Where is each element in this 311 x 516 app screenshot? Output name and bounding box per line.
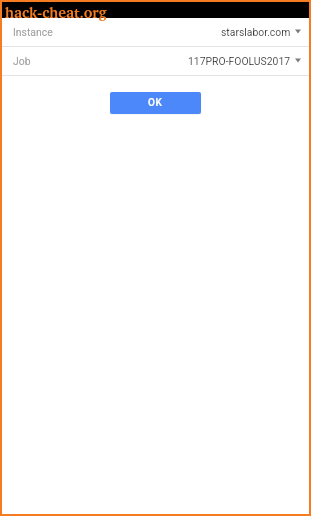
staticText: hack-cheat.org — [5, 4, 107, 22]
button[interactable]: Instance — [2, 18, 309, 47]
button[interactable]: Job — [2, 47, 309, 76]
other: Open Instance list — [295, 28, 301, 37]
staticText: OK — [148, 97, 163, 109]
other: Open Job list — [295, 57, 301, 66]
staticText: Instance — [13, 26, 53, 38]
staticText: 117PRO-FOOLUS2017 — [188, 55, 291, 67]
staticText: Job — [13, 55, 31, 67]
staticText: starslabor.com — [221, 26, 291, 38]
button[interactable]: OK — [110, 92, 201, 114]
